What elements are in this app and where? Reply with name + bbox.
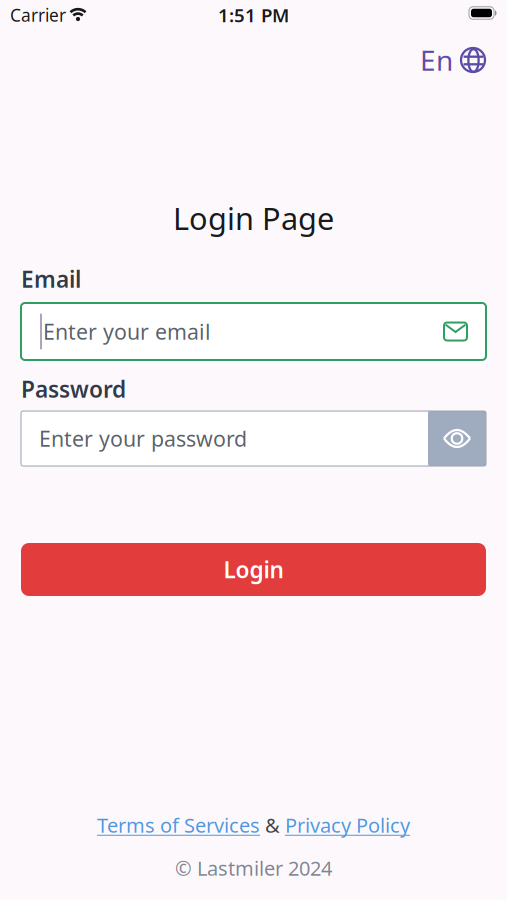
staticText: Carrier	[10, 3, 66, 26]
staticText: Privacy Policy	[285, 812, 410, 838]
button[interactable]: Change language	[420, 41, 485, 79]
staticText: Password	[21, 374, 126, 404]
button[interactable]: Terms of Services	[97, 812, 260, 838]
staticText: En	[420, 41, 453, 79]
staticText: Login Page	[173, 198, 334, 238]
button[interactable]: Show password	[428, 411, 486, 466]
staticText: &	[265, 812, 280, 838]
staticText: Enter your email	[43, 317, 211, 346]
staticText: Email	[21, 264, 81, 294]
button[interactable]: Privacy Policy	[285, 812, 410, 838]
staticText: Enter your password	[39, 424, 247, 453]
button[interactable]: Login	[21, 543, 486, 596]
staticText: Login	[223, 554, 283, 584]
staticText: Terms of Services	[97, 812, 260, 838]
staticText: 1:51 PM	[218, 3, 289, 27]
staticText: © Lastmiler 2024	[175, 855, 332, 881]
